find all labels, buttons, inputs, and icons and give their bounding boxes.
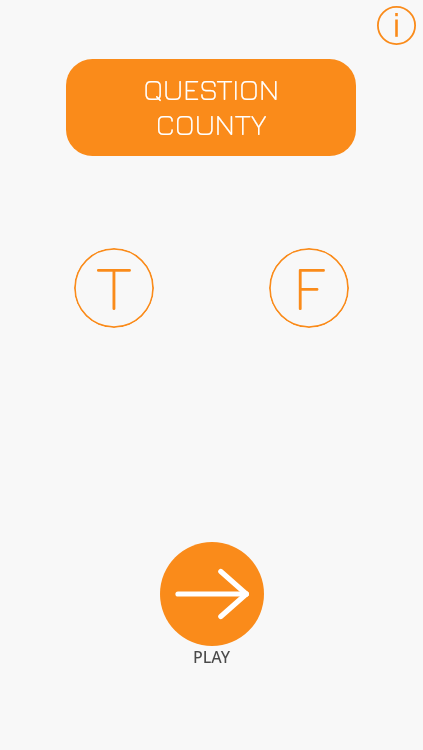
button[interactable]: F bbox=[269, 248, 349, 328]
button[interactable]: QUESTION COUNTY bbox=[66, 59, 356, 156]
staticText: QUESTION COUNTY bbox=[143, 72, 279, 141]
button[interactable]: Play bbox=[160, 542, 264, 646]
button[interactable]: Info bbox=[369, 0, 423, 53]
button[interactable]: T bbox=[74, 248, 154, 328]
staticText: F bbox=[293, 248, 325, 324]
staticText: T bbox=[96, 248, 132, 324]
staticText: PLAY bbox=[193, 646, 231, 668]
